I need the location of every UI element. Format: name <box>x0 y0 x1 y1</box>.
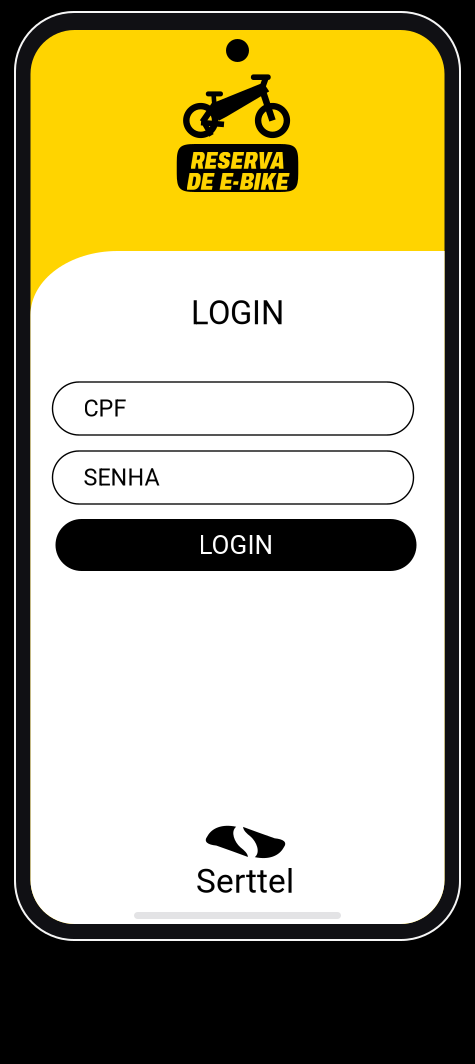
staticText: SENHA <box>83 464 159 491</box>
staticText: LOGIN <box>198 530 273 560</box>
staticText: Serttel <box>196 862 294 901</box>
button[interactable]: SENHA <box>52 451 413 504</box>
staticText: DE E-BIKE <box>186 169 288 195</box>
staticText: CPF <box>83 395 126 422</box>
button[interactable]: CPF <box>52 382 413 435</box>
staticText: RESERVA <box>190 148 284 173</box>
staticText: LOGIN <box>191 294 284 332</box>
button[interactable]: LOGIN <box>191 294 284 332</box>
button[interactable]: LOGIN <box>55 519 416 571</box>
